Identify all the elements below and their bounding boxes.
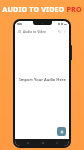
button[interactable]: Menu: [17, 29, 22, 34]
button[interactable]: Home: [40, 140, 45, 145]
staticText: Audio to Video Converter Pro: [23, 29, 57, 33]
button[interactable]: More options: [62, 29, 67, 34]
button[interactable]: Import audio: [57, 127, 66, 136]
staticText: Import Your Audio Here: [19, 77, 66, 82]
button[interactable]: Recents: [54, 140, 59, 145]
button[interactable]: Back: [25, 140, 30, 145]
button[interactable]: Search: [57, 29, 62, 34]
staticText: AUDIO TO VIDEO PRO: [2, 4, 82, 14]
